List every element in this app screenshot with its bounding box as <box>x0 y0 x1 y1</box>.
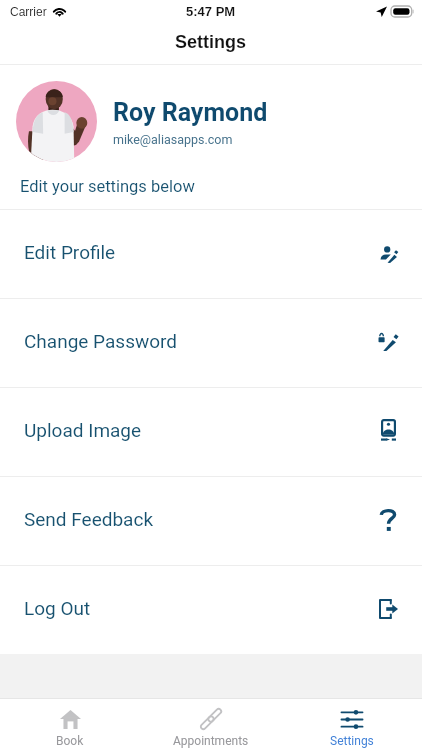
staticText: 5:47 PM <box>186 4 236 19</box>
other: Edit Profile <box>380 246 398 263</box>
staticText: Upload Image <box>24 419 142 441</box>
button[interactable]: Log Out <box>0 566 422 654</box>
staticText: Change Password <box>24 330 178 352</box>
staticText: Appointments <box>173 734 249 748</box>
staticText: Roy Raymond <box>113 98 268 127</box>
staticText: Settings <box>330 734 374 748</box>
other: Send Feedback <box>381 509 395 530</box>
other: Change Password <box>378 332 399 351</box>
other: Upload Image <box>381 419 396 441</box>
staticText: Book <box>56 734 84 748</box>
staticText: Send Feedback <box>24 508 154 530</box>
button[interactable]: Appointments <box>140 698 281 750</box>
button[interactable]: Book <box>0 698 140 750</box>
staticText: mike@aliasapps.com <box>113 132 233 147</box>
button[interactable]: Edit Profile <box>0 210 422 298</box>
other: Log Out <box>379 599 398 619</box>
button[interactable]: Settings <box>281 698 422 750</box>
staticText: Log Out <box>24 597 91 619</box>
staticText: Edit Profile <box>24 241 116 263</box>
button[interactable]: Send Feedback <box>0 477 422 565</box>
staticText: Carrier <box>10 5 47 18</box>
staticText: Edit your settings below <box>20 177 195 196</box>
button[interactable]: Change Password <box>0 299 422 387</box>
button[interactable]: Upload Image <box>0 388 422 476</box>
staticText: Settings <box>175 32 247 52</box>
